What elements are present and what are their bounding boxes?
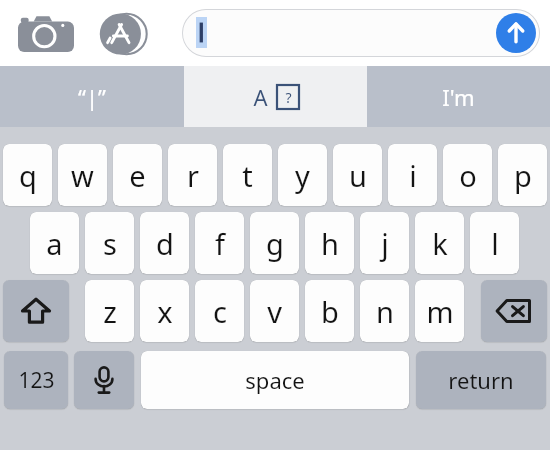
staticText: f: [215, 224, 225, 263]
button[interactable]: Camera: [18, 14, 74, 52]
staticText: g: [266, 224, 284, 263]
button[interactable]: a: [30, 212, 79, 274]
staticText: e: [129, 156, 146, 195]
staticText: l: [491, 224, 499, 263]
staticText: r: [187, 156, 199, 195]
button[interactable]: m: [415, 280, 464, 342]
staticText: d: [156, 224, 174, 263]
staticText: m: [426, 292, 454, 331]
button[interactable]: w: [58, 144, 107, 206]
button[interactable]: d: [140, 212, 189, 274]
button[interactable]: l: [470, 212, 519, 274]
button[interactable]: App Store: [98, 13, 150, 55]
button[interactable]: i: [388, 144, 437, 206]
button[interactable]: u: [333, 144, 382, 206]
staticText: 123: [18, 366, 55, 395]
button[interactable]: Backspace: [481, 280, 547, 342]
button[interactable]: space: [141, 351, 409, 409]
staticText: t: [242, 156, 253, 195]
staticText: A: [253, 82, 268, 112]
button[interactable]: Send: [182, 9, 540, 57]
staticText: return: [448, 365, 514, 395]
button[interactable]: Send: [496, 13, 536, 53]
button[interactable]: r: [168, 144, 217, 206]
button[interactable]: g: [250, 212, 299, 274]
button[interactable]: Shift: [3, 280, 69, 342]
button[interactable]: I'm: [367, 66, 550, 127]
staticText: i: [409, 156, 417, 195]
button[interactable]: j: [360, 212, 409, 274]
button[interactable]: y: [278, 144, 327, 206]
staticText: v: [267, 292, 282, 331]
button[interactable]: b: [305, 280, 354, 342]
staticText: s: [103, 224, 117, 263]
button[interactable]: p: [498, 144, 547, 206]
staticText: j: [381, 224, 389, 263]
button[interactable]: return: [416, 351, 546, 409]
staticText: w: [71, 156, 94, 195]
button[interactable]: Dictate: [74, 351, 134, 409]
button[interactable]: z: [85, 280, 134, 342]
button[interactable]: t: [223, 144, 272, 206]
button[interactable]: h: [305, 212, 354, 274]
staticText: h: [321, 224, 339, 263]
staticText: c: [213, 292, 227, 331]
staticText: p: [514, 156, 532, 195]
staticText: space: [245, 365, 305, 395]
staticText: y: [295, 156, 310, 195]
staticText: z: [103, 292, 117, 331]
staticText: a: [46, 224, 63, 263]
staticText: “|”: [78, 82, 106, 112]
button[interactable]: f: [195, 212, 244, 274]
button[interactable]: “|”: [0, 66, 184, 127]
button[interactable]: 123: [4, 351, 68, 409]
button[interactable]: e: [113, 144, 162, 206]
button[interactable]: o: [443, 144, 492, 206]
staticText: o: [459, 156, 477, 195]
button[interactable]: A: [184, 66, 367, 127]
button[interactable]: x: [140, 280, 189, 342]
staticText: u: [349, 156, 367, 195]
staticText: b: [321, 292, 339, 331]
staticText: x: [157, 292, 173, 331]
button[interactable]: n: [360, 280, 409, 342]
button[interactable]: c: [195, 280, 244, 342]
staticText: k: [432, 224, 448, 263]
button[interactable]: q: [3, 144, 52, 206]
button[interactable]: v: [250, 280, 299, 342]
button[interactable]: s: [85, 212, 134, 274]
staticText: I'm: [442, 82, 475, 112]
staticText: n: [376, 292, 394, 331]
staticText: ?: [285, 88, 292, 107]
staticText: q: [19, 156, 37, 195]
button[interactable]: k: [415, 212, 464, 274]
